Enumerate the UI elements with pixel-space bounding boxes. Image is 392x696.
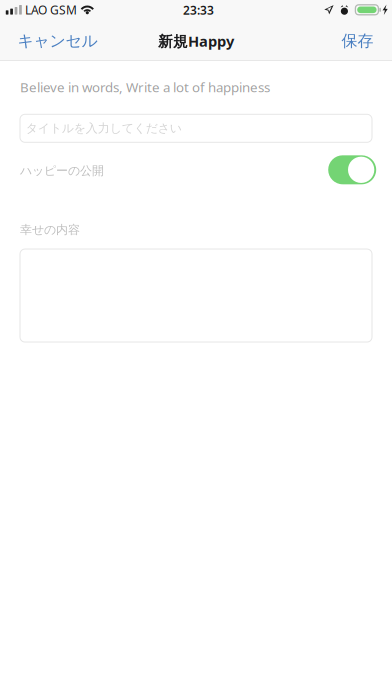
staticText: 23:33 [183,2,214,18]
staticText: Believe in words, Write a lot of happine… [20,78,270,96]
staticText: 新規Happy [158,31,234,51]
staticText: 保存 [341,31,373,51]
staticText: 幸せの内容 [20,222,80,237]
button[interactable]: ハッピーの公開 [328,155,376,184]
button[interactable]: キャンセル [0,22,115,60]
staticText: ハッピーの公開 [20,163,104,178]
staticText: タイトルを入力してください [26,121,182,136]
staticText: LAO GSM [25,2,77,18]
button[interactable]: 保存 [323,22,392,60]
staticText: キャンセル [17,31,97,51]
